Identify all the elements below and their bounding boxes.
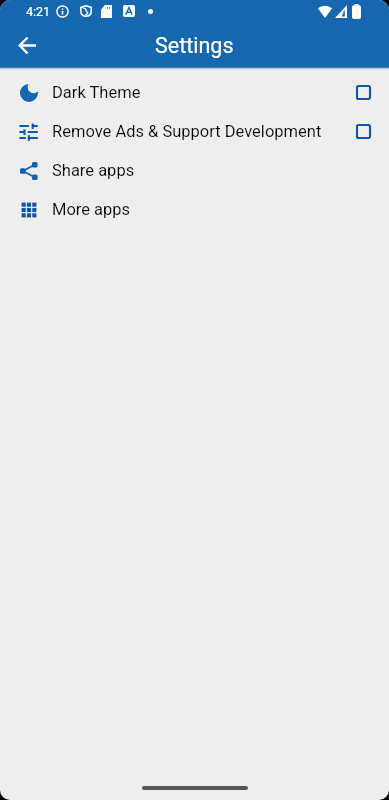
staticText: Dark Theme — [52, 83, 141, 102]
button[interactable]: Share apps — [0, 151, 389, 190]
staticText: More apps — [52, 200, 131, 219]
staticText: Settings — [155, 33, 234, 58]
button[interactable]: Remove Ads & Support Development — [0, 112, 389, 151]
button[interactable]: Dark Theme — [0, 73, 389, 112]
staticText: 4:21 — [26, 4, 51, 19]
button[interactable]: More apps — [0, 190, 389, 229]
staticText: Remove Ads & Support Development — [52, 122, 322, 141]
button[interactable]: Navigate back — [9, 27, 46, 64]
staticText: Share apps — [52, 161, 135, 180]
